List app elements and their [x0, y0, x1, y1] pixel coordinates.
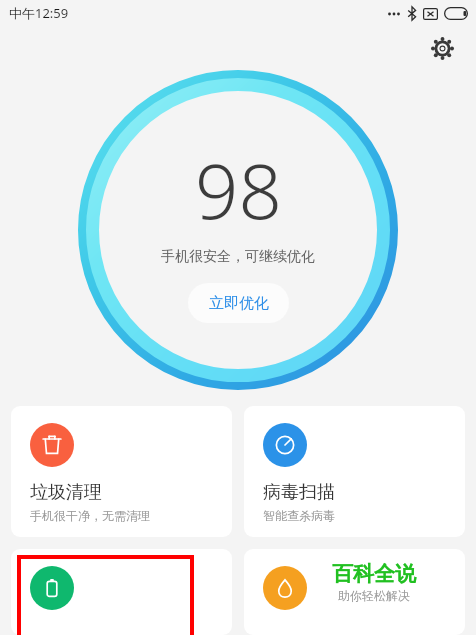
staticText: 病毒扫描	[263, 481, 335, 504]
button[interactable]: 病毒扫描	[244, 406, 465, 537]
staticText: 手机很干净，无需清理	[30, 508, 150, 523]
staticText: 手机很安全，可继续优化	[161, 248, 315, 266]
staticText: 中午12:59	[9, 4, 69, 22]
button[interactable]: 垃圾清理	[11, 406, 232, 537]
staticText: 立即优化	[209, 294, 269, 313]
staticText: 垃圾清理	[30, 481, 102, 504]
button[interactable]: 立即优化	[188, 283, 289, 323]
button[interactable]	[244, 549, 465, 635]
button[interactable]: Settings	[424, 30, 460, 66]
staticText: 智能查杀病毒	[263, 508, 335, 523]
staticText: 助你轻松解决	[338, 588, 410, 603]
staticText: 98	[195, 138, 282, 242]
staticText: 百科全说	[332, 561, 416, 587]
button[interactable]	[11, 549, 232, 635]
